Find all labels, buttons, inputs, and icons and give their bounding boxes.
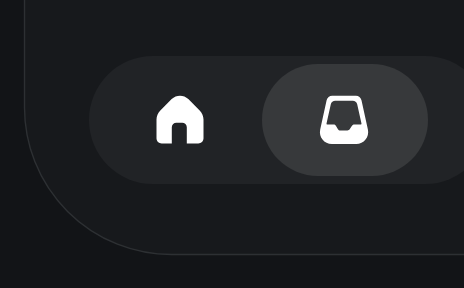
button[interactable]: Inbox [262,64,428,176]
button[interactable]: Home [104,64,256,176]
